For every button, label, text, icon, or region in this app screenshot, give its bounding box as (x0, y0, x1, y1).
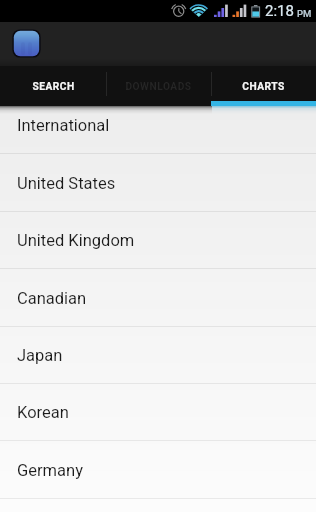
staticText: Japan (17, 346, 63, 365)
staticText: 2:18 (265, 2, 294, 20)
staticText: International (17, 116, 110, 135)
button[interactable]: United States (0, 155, 316, 212)
button[interactable]: CHARTS (211, 66, 316, 106)
button[interactable]: Korean (0, 384, 316, 441)
button[interactable]: App logo (13, 30, 40, 57)
button[interactable]: International (0, 106, 316, 154)
staticText: United States (17, 174, 116, 193)
button[interactable]: SEARCH (0, 66, 106, 106)
staticText: DOWNLOADS (125, 81, 192, 93)
staticText: United Kingdom (17, 231, 135, 250)
button[interactable]: Japan (0, 327, 316, 384)
staticText: PM (297, 8, 312, 19)
staticText: SEARCH (32, 81, 75, 93)
button[interactable]: United Kingdom (0, 212, 316, 269)
staticText: CHARTS (242, 81, 285, 93)
button[interactable]: Canadian (0, 270, 316, 327)
staticText: Korean (17, 403, 69, 422)
staticText: Canadian (17, 289, 87, 308)
button[interactable]: DOWNLOADS (106, 66, 211, 106)
button[interactable]: Germany (0, 442, 316, 499)
staticText: Germany (17, 461, 83, 480)
